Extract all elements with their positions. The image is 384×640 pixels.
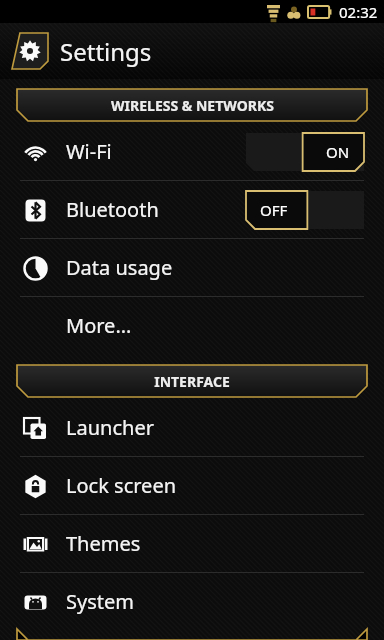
button[interactable]: Data usage [0,239,384,296]
button[interactable]: Lock screen [0,457,384,514]
button[interactable]: Toggle on [246,133,364,171]
staticText: Launcher [66,414,154,441]
staticText: Lock screen [66,472,177,499]
staticText: ON [326,142,350,162]
staticText: System [66,588,134,615]
staticText: Bluetooth [66,196,159,223]
staticText: OFF [260,200,288,220]
staticText: Wi-Fi [66,138,112,165]
button[interactable]: More… [0,297,384,354]
button[interactable]: System [0,573,384,630]
staticText: 02:32 [339,2,378,22]
staticText: WIRELESS & NETWORKS [111,96,274,115]
staticText: Data usage [66,254,173,281]
button[interactable]: Launcher [0,399,384,456]
button[interactable]: Bluetooth [0,181,384,238]
staticText: INTERFACE [154,372,230,391]
button[interactable]: Themes [0,515,384,572]
staticText: Themes [66,530,141,557]
button[interactable]: Wi-Fi [0,123,384,180]
staticText: More… [66,312,132,339]
staticText: Settings [60,35,152,68]
button[interactable]: INTERFACE [17,365,367,397]
button[interactable]: Toggle off [246,191,364,229]
button[interactable]: WIRELESS & NETWORKS [17,89,367,121]
